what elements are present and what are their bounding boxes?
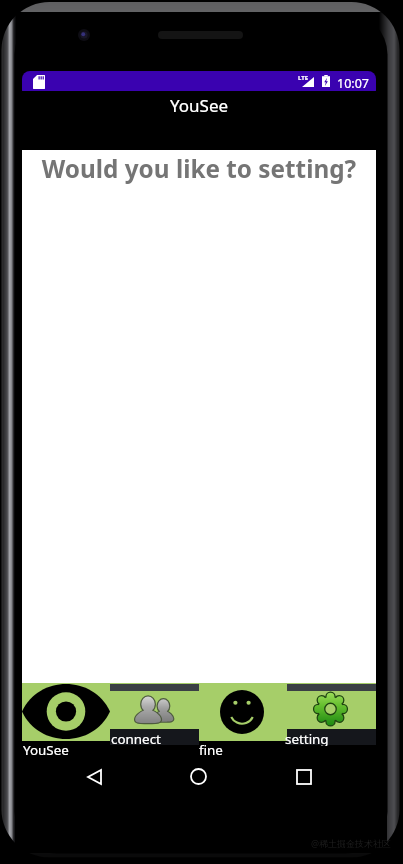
staticText: 10:07 (337, 75, 369, 92)
button[interactable]: setting (287, 729, 376, 745)
button[interactable]: YouSee (22, 741, 111, 759)
staticText: YouSee (170, 94, 229, 117)
staticText: YouSee (23, 741, 69, 759)
button[interactable] (199, 683, 288, 741)
staticText: Would you like to setting? (22, 152, 376, 185)
staticText: fine (199, 741, 223, 759)
staticText: LTE (298, 74, 309, 82)
button[interactable] (22, 683, 111, 741)
staticText: setting (285, 730, 329, 746)
button[interactable]: connect (110, 729, 199, 745)
staticText: @稀土掘金技术社区 (311, 837, 392, 849)
button[interactable]: Home (190, 768, 207, 785)
button[interactable]: fine (199, 741, 288, 759)
button[interactable] (287, 683, 376, 729)
button[interactable]: Back (87, 769, 102, 785)
button[interactable]: Recents (296, 769, 312, 785)
staticText: connect (111, 730, 161, 746)
button[interactable] (110, 683, 199, 729)
